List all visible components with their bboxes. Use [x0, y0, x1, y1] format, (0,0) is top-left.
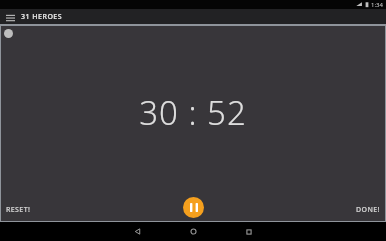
staticText: DONE! — [356, 205, 380, 215]
staticText: 31 HEROES — [21, 12, 63, 22]
button[interactable]: Back — [120, 222, 154, 241]
staticText: 1:34 — [371, 1, 383, 9]
button[interactable]: DONE! — [350, 199, 385, 221]
button[interactable]: Home — [176, 222, 210, 241]
button[interactable]: Recent apps — [232, 222, 266, 241]
staticText: 30 : 52 — [139, 90, 247, 135]
other: Timer status indicator — [4, 29, 13, 38]
button[interactable]: Open navigation drawer — [4, 11, 16, 23]
button[interactable]: RESET! — [1, 199, 37, 221]
staticText: RESET! — [6, 205, 31, 215]
button[interactable]: Pause timer — [183, 197, 204, 218]
